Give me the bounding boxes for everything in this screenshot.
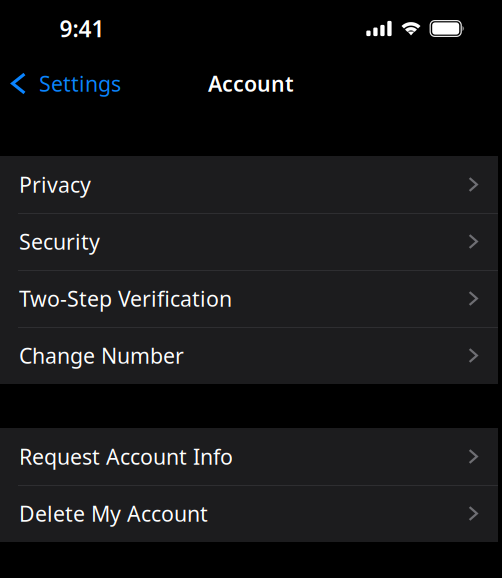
staticText: Privacy (19, 170, 91, 199)
button[interactable]: Back to Settings (0, 63, 131, 104)
button[interactable]: Delete My Account (0, 485, 498, 542)
staticText: Request Account Info (19, 442, 233, 471)
button[interactable]: Change Number (0, 327, 498, 384)
staticText: Delete My Account (19, 499, 208, 528)
staticText: Settings (39, 69, 121, 98)
button[interactable]: Privacy (0, 156, 498, 213)
button[interactable]: Request Account Info (0, 428, 498, 485)
button[interactable]: Two-Step Verification (0, 270, 498, 327)
staticText: Two-Step Verification (19, 284, 232, 313)
button[interactable]: Security (0, 213, 498, 270)
staticText: Security (19, 227, 100, 256)
staticText: 9:41 (59, 13, 104, 43)
staticText: Change Number (19, 341, 184, 370)
staticText: Account (208, 69, 294, 98)
